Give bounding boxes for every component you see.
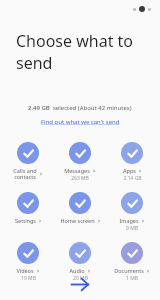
- staticText: Choose what to send: [16, 30, 148, 74]
- staticText: Home screen: [60, 217, 95, 224]
- button[interactable]: Calls and contacts: [4, 141, 52, 182]
- staticText: selected (About 42 minutes): [53, 104, 132, 112]
- staticText: Videos: [16, 267, 34, 274]
- button[interactable]: Apps: [108, 141, 156, 183]
- staticText: 9 MB: [126, 225, 138, 232]
- button[interactable]: Videos: [4, 241, 52, 283]
- staticText: Calls and contacts: [13, 167, 37, 181]
- button[interactable]: Settings: [4, 191, 52, 225]
- staticText: Audio: [69, 267, 85, 274]
- staticText: 263 MB: [71, 175, 89, 182]
- staticText: Apps: [123, 167, 136, 174]
- staticText: 19 MB: [21, 275, 36, 282]
- button[interactable]: Send: [0, 283, 160, 300]
- staticText: 2.14 GB: [123, 175, 142, 182]
- staticText: 20 MB: [73, 275, 88, 282]
- button[interactable]: Audio: [56, 241, 104, 283]
- staticText: 1 MB: [126, 275, 138, 282]
- button[interactable]: Documents: [108, 241, 156, 283]
- staticText: Documents: [114, 267, 144, 274]
- staticText: Find out what we can't send: [41, 118, 120, 126]
- staticText: Images: [119, 217, 139, 224]
- button[interactable]: Messages: [56, 141, 104, 183]
- staticText: Settings: [15, 217, 36, 224]
- button[interactable]: Images: [108, 191, 156, 233]
- staticText: 2.49 GB: [28, 104, 50, 112]
- staticText: Messages: [64, 167, 90, 174]
- other: Send: [67, 283, 93, 286]
- button[interactable]: Find out what we can't send: [37, 117, 124, 127]
- button[interactable]: Home screen: [56, 191, 104, 225]
